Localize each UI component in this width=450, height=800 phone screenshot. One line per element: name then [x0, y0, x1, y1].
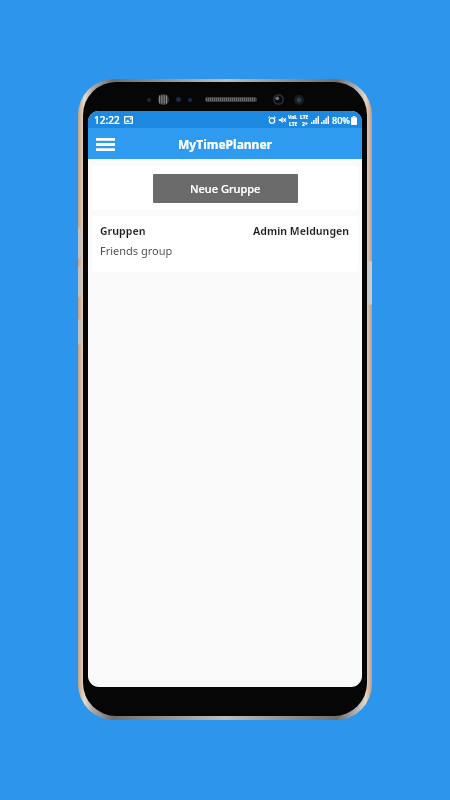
staticText: 12:22	[94, 113, 120, 127]
staticText: LTE	[289, 121, 298, 126]
staticText: Admin Meldungen	[253, 224, 350, 238]
button[interactable]: Open navigation menu	[91, 130, 119, 158]
button[interactable]: Neue Gruppe	[153, 174, 298, 203]
staticText: 2+	[302, 121, 308, 126]
staticText: Neue Gruppe	[190, 181, 261, 196]
staticText: Gruppen	[100, 224, 146, 238]
button[interactable]: Friends group	[100, 243, 350, 258]
staticText: LTE	[300, 114, 309, 121]
staticText: MyTimePlanner	[178, 136, 272, 152]
staticText: Friends group	[100, 243, 173, 258]
staticText: VoL	[288, 114, 298, 121]
staticText: 80%	[332, 114, 350, 126]
